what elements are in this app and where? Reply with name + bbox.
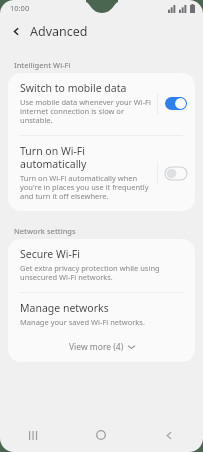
button[interactable]: Switch to mobile data	[8, 73, 195, 135]
button[interactable]: Back	[135, 418, 203, 452]
button[interactable]: Secure Wi-Fi	[8, 239, 195, 292]
staticText: Turn on Wi-Fi automatically	[20, 144, 151, 171]
button[interactable]: View more (4)	[8, 336, 195, 362]
button[interactable]: Recent apps	[0, 418, 67, 452]
button[interactable]: Manage networks	[8, 293, 195, 336]
staticText: Secure Wi-Fi	[20, 247, 81, 261]
button[interactable]: Home	[67, 418, 135, 452]
staticText: Use mobile data whenever your Wi-Fi inte…	[20, 97, 151, 126]
staticText: Turn on Wi-Fi automatically when you're …	[20, 173, 151, 202]
button[interactable]: Off	[165, 167, 187, 180]
staticText: Get extra privacy protection while using…	[20, 263, 183, 283]
staticText: Intelligent Wi-Fi	[14, 60, 71, 70]
staticText: View more (4)	[69, 341, 124, 353]
staticText: Manage your saved Wi-Fi networks.	[20, 317, 145, 327]
staticText: Manage networks	[20, 301, 109, 315]
staticText: Advanced	[30, 23, 88, 40]
staticText: Network settings	[14, 226, 76, 236]
button[interactable]: Turn on Wi-Fi automatically	[8, 136, 195, 211]
staticText: 10:00	[10, 3, 30, 13]
staticText: Switch to mobile data	[20, 81, 127, 95]
button[interactable]: Back	[6, 21, 26, 41]
button[interactable]: On	[165, 97, 187, 110]
